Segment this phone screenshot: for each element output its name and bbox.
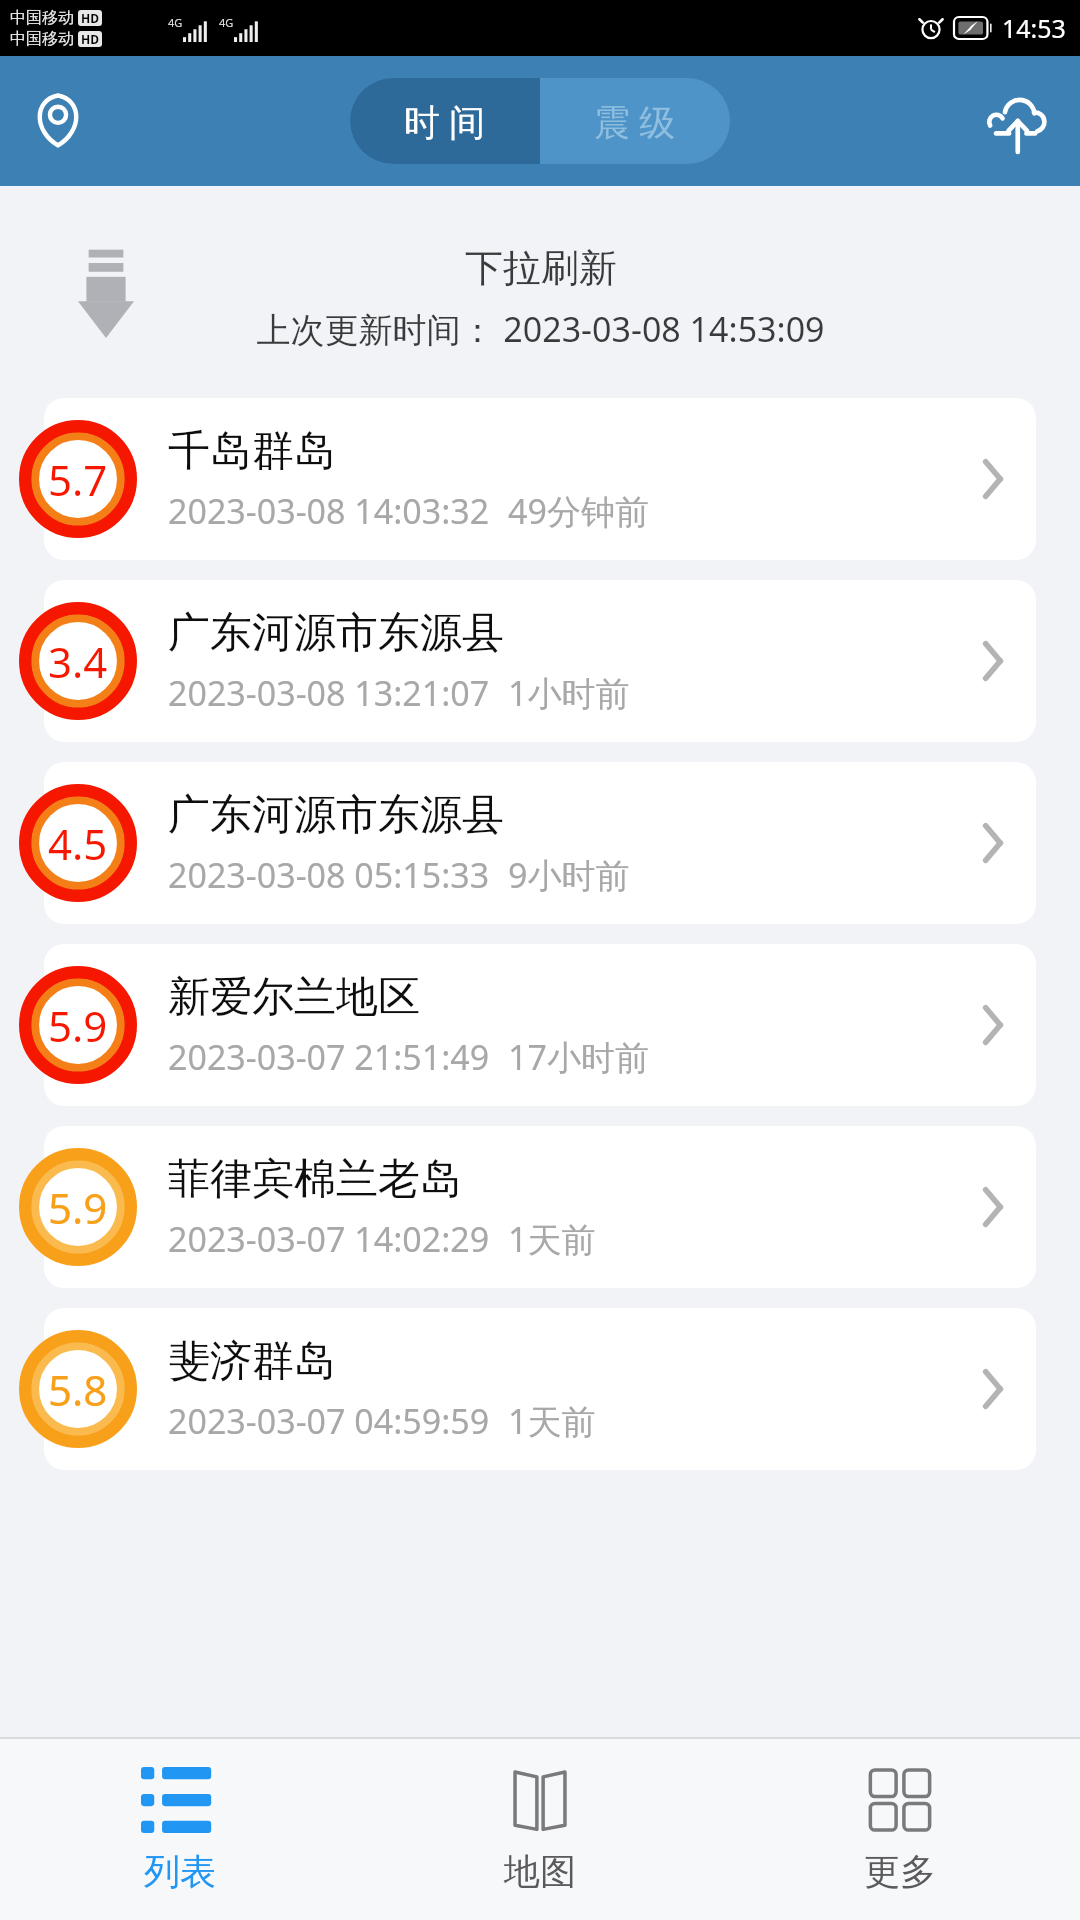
button[interactable] bbox=[44, 944, 1036, 1106]
staticText: 2023-03-08 13:21:07 bbox=[168, 670, 490, 716]
staticText: 2023-03-08 05:15:33 bbox=[168, 852, 490, 898]
staticText: 千岛群岛 bbox=[168, 425, 336, 478]
button[interactable]: 列表 bbox=[0, 1739, 360, 1920]
staticText: 震 级 bbox=[594, 97, 676, 146]
staticText: 5.9 bbox=[48, 997, 108, 1054]
staticText: 4G bbox=[219, 15, 234, 30]
staticText: 1天前 bbox=[508, 1216, 596, 1262]
button[interactable] bbox=[44, 1126, 1036, 1288]
staticText: 4G bbox=[168, 15, 183, 30]
staticText: 5.9 bbox=[48, 1179, 108, 1236]
staticText: 3.4 bbox=[48, 633, 108, 690]
staticText: 2023-03-07 21:51:49 bbox=[168, 1034, 490, 1080]
staticText: 地图 bbox=[504, 1849, 576, 1894]
button[interactable]: Upload bbox=[980, 82, 1058, 160]
staticText: 时 间 bbox=[404, 97, 486, 146]
button[interactable] bbox=[44, 1308, 1036, 1470]
staticText: 中国移动 bbox=[10, 29, 74, 49]
button[interactable]: 地图 bbox=[360, 1739, 720, 1920]
button[interactable] bbox=[44, 580, 1036, 742]
staticText: 9小时前 bbox=[508, 852, 630, 898]
button[interactable]: 更多 bbox=[720, 1739, 1080, 1920]
staticText: 中国移动 bbox=[10, 8, 74, 28]
staticText: 17小时前 bbox=[508, 1034, 649, 1080]
staticText: 上次更新时间： 2023-03-08 14:53:09 bbox=[256, 306, 825, 352]
button[interactable] bbox=[44, 762, 1036, 924]
staticText: 列表 bbox=[144, 1849, 216, 1894]
staticText: 广东河源市东源县 bbox=[168, 789, 504, 842]
staticText: 广东河源市东源县 bbox=[168, 607, 504, 660]
button[interactable]: 时 间 bbox=[350, 78, 540, 164]
staticText: 斐济群岛 bbox=[168, 1335, 336, 1388]
staticText: HD bbox=[81, 10, 99, 26]
staticText: 下拉刷新 bbox=[465, 244, 617, 292]
staticText: 14:53 bbox=[1002, 11, 1066, 45]
staticText: 1天前 bbox=[508, 1398, 596, 1444]
staticText: 2023-03-07 14:02:29 bbox=[168, 1216, 490, 1262]
staticText: 菲律宾棉兰老岛 bbox=[168, 1153, 462, 1206]
button[interactable]: 震 级 bbox=[540, 78, 730, 164]
staticText: HD bbox=[81, 31, 99, 47]
staticText: 5.7 bbox=[48, 451, 108, 508]
button[interactable] bbox=[44, 398, 1036, 560]
staticText: 4.5 bbox=[48, 815, 108, 872]
staticText: 新爱尔兰地区 bbox=[168, 971, 420, 1024]
staticText: 5.8 bbox=[48, 1361, 108, 1418]
staticText: 更多 bbox=[864, 1849, 936, 1894]
staticText: 49分钟前 bbox=[508, 488, 649, 534]
staticText: 2023-03-08 14:03:32 bbox=[168, 488, 490, 534]
staticText: 1小时前 bbox=[508, 670, 630, 716]
button[interactable]: Location bbox=[22, 85, 94, 157]
staticText: 2023-03-07 04:59:59 bbox=[168, 1398, 490, 1444]
